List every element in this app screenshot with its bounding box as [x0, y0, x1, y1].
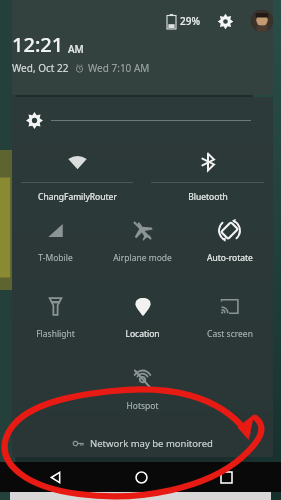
- other: Airplane mode: [132, 220, 153, 241]
- staticText: Flashlight: [36, 328, 75, 340]
- button[interactable]: Bluetooth: [142, 143, 273, 203]
- button[interactable]: Hotspot: [99, 361, 186, 416]
- staticText: Airplane mode: [113, 252, 172, 264]
- button[interactable]: User profile: [251, 10, 273, 32]
- other: Cast screen: [219, 296, 240, 317]
- button[interactable]: Airplane mode: [99, 213, 186, 268]
- other: Mobile data: [46, 221, 65, 240]
- staticText: Bluetooth: [188, 191, 228, 203]
- other: Auto-rotate: [218, 219, 241, 242]
- staticText: Hotspot: [126, 400, 159, 412]
- other: Bluetooth: [198, 152, 218, 172]
- button[interactable]: Settings: [215, 11, 235, 31]
- staticText: 29%: [180, 14, 200, 28]
- other: Wi-Fi: [67, 152, 88, 173]
- other: Location: [133, 297, 153, 317]
- staticText: Auto-rotate: [207, 252, 253, 264]
- button[interactable]: Auto-rotate: [186, 213, 273, 268]
- button[interactable]: Brightness: [26, 97, 251, 143]
- button[interactable]: Location: [99, 289, 186, 344]
- button[interactable]: Mobile data: [12, 213, 99, 268]
- button[interactable]: Recent apps: [213, 464, 239, 490]
- staticText: Wed, Oct 22: [12, 61, 69, 75]
- staticText: Cast screen: [207, 328, 253, 340]
- button[interactable]: Back: [42, 464, 68, 490]
- staticText: AM: [68, 42, 84, 56]
- other: Alarm: [75, 64, 84, 73]
- staticText: Wed 7:10 AM: [88, 61, 150, 75]
- staticText: 12:21: [12, 31, 64, 58]
- staticText: Location: [125, 328, 160, 340]
- staticText: T-Mobile: [38, 252, 73, 264]
- other: Flashlight: [45, 296, 66, 317]
- staticText: Network may be monitored: [90, 437, 213, 450]
- button[interactable]: Flashlight: [12, 289, 99, 344]
- staticText: ChangFamilyRouter: [38, 191, 117, 203]
- button[interactable]: Wi-Fi: [12, 143, 142, 203]
- button[interactable]: Cast screen: [186, 289, 273, 344]
- other: Hotspot: [132, 368, 153, 389]
- other: VPN key: [73, 438, 84, 449]
- button[interactable]: Home: [128, 464, 154, 490]
